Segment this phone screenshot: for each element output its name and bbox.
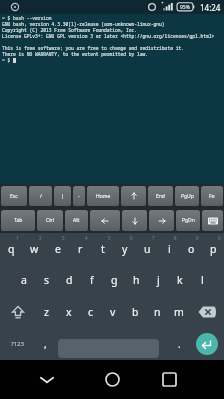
staticText: h [133, 273, 140, 287]
staticText: There is NO WARRANTY, to the extent perm… [2, 51, 149, 57]
staticText: q [8, 242, 15, 256]
staticText: . [178, 337, 181, 351]
staticText: 3 [62, 235, 65, 241]
staticText: Fn [209, 193, 215, 200]
staticText: / [40, 193, 42, 200]
button[interactable]: Tab [1, 210, 35, 231]
button[interactable]: Fn [201, 186, 223, 206]
staticText: Home [96, 193, 111, 200]
button[interactable] [190, 328, 224, 360]
staticText: 14:24 [200, 2, 221, 13]
staticText: j [157, 273, 160, 287]
button[interactable] [88, 367, 136, 392]
button[interactable]: d [58, 264, 81, 296]
button[interactable]: j [147, 264, 169, 296]
staticText: Copyright (C) 2013 Free Software Foundat… [2, 27, 138, 33]
staticText: Alt [73, 217, 80, 224]
button[interactable]: - [73, 186, 85, 206]
button[interactable]: . [168, 328, 190, 360]
button[interactable]: c [80, 296, 102, 328]
button[interactable] [190, 296, 224, 328]
button[interactable]: r [69, 233, 92, 264]
button[interactable]: x [58, 296, 80, 328]
button[interactable] [90, 210, 120, 231]
button[interactable]: PgUp [175, 186, 199, 206]
staticText: ~ $ [2, 57, 11, 63]
staticText: w [30, 242, 39, 256]
button[interactable]: PgDn [176, 210, 200, 231]
button[interactable]: l [191, 264, 213, 296]
staticText: Ctrl [46, 217, 55, 224]
button[interactable] [0, 296, 35, 328]
button[interactable]: k [169, 264, 191, 296]
button[interactable]: i [158, 233, 180, 264]
button[interactable]: q [0, 233, 23, 264]
staticText: t [101, 242, 105, 256]
button[interactable] [202, 210, 223, 231]
staticText: PgDn [182, 217, 195, 224]
staticText: 7 [152, 235, 155, 241]
button[interactable]: y [114, 233, 136, 264]
button[interactable]: s [35, 264, 58, 296]
staticText: 2 [39, 235, 42, 241]
staticText: r [78, 242, 83, 256]
staticText: 5 [108, 235, 111, 241]
staticText: | [61, 193, 64, 200]
button[interactable]: , [34, 328, 56, 360]
staticText: a [21, 273, 27, 287]
button[interactable]: u [136, 233, 158, 264]
button[interactable]: e [46, 233, 69, 264]
staticText: Tab [14, 217, 23, 224]
button[interactable] [122, 210, 147, 231]
button[interactable]: End [148, 186, 173, 206]
staticText: - [78, 193, 80, 200]
staticText: v [110, 305, 116, 319]
staticText: PgUp [181, 193, 194, 200]
staticText: u [144, 242, 151, 256]
button[interactable]: Esc [1, 186, 27, 206]
staticText: o [188, 242, 195, 256]
button[interactable]: n [146, 296, 168, 328]
staticText: c [88, 305, 94, 319]
button[interactable]: Ctrl [37, 210, 63, 231]
staticText: b [132, 305, 139, 319]
button[interactable]: t [92, 233, 114, 264]
button[interactable]: | [54, 186, 71, 206]
button[interactable]: g [103, 264, 125, 296]
button[interactable]: w [23, 233, 46, 264]
button[interactable]: p [202, 233, 224, 264]
staticText: f [90, 273, 94, 287]
staticText: End [156, 193, 165, 200]
staticText: p [210, 242, 217, 256]
button[interactable]: f [81, 264, 103, 296]
button[interactable]: v [102, 296, 124, 328]
button[interactable] [23, 367, 71, 392]
button[interactable] [145, 367, 193, 392]
staticText: 0 [218, 235, 221, 241]
button[interactable]: o [180, 233, 202, 264]
staticText: 9 [196, 235, 199, 241]
staticText: 8 [174, 235, 177, 241]
button[interactable]: h [125, 264, 147, 296]
staticText: k [177, 273, 183, 287]
staticText: 6 [130, 235, 133, 241]
staticText: 95% [180, 4, 190, 11]
button[interactable]: a [12, 264, 35, 296]
button[interactable]: ?123 [0, 328, 34, 360]
button[interactable]: Alt [65, 210, 88, 231]
staticText: z [44, 305, 49, 319]
button[interactable]: m [168, 296, 190, 328]
staticText: d [66, 273, 73, 287]
button[interactable] [121, 186, 146, 206]
staticText: 1 [16, 235, 19, 241]
staticText: e [55, 242, 61, 256]
button[interactable]: / [29, 186, 52, 206]
staticText: x [66, 305, 72, 319]
button[interactable] [149, 210, 174, 231]
staticText: i [168, 242, 171, 256]
staticText: License GPLv3+: GNU GPL version 3 or lat… [2, 33, 215, 39]
button[interactable]: z [35, 296, 58, 328]
button[interactable]: b [124, 296, 146, 328]
button[interactable]: Home [87, 186, 119, 206]
